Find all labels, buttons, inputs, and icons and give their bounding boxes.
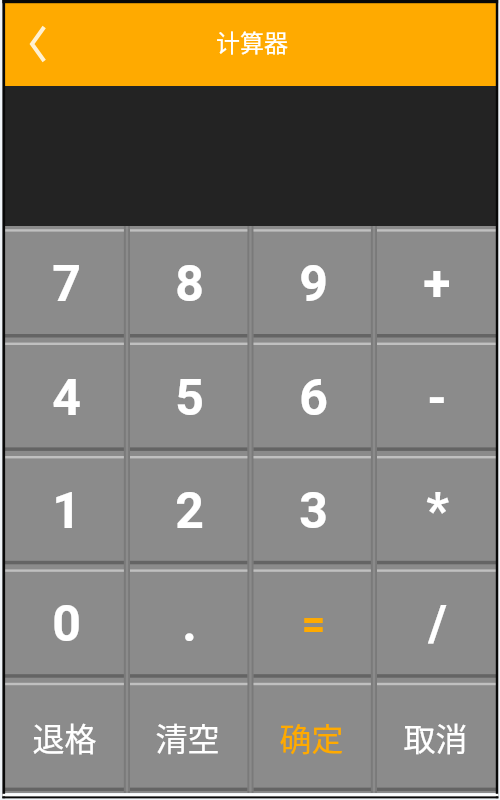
staticText: 2	[175, 482, 204, 541]
button[interactable]: 退格	[3, 680, 126, 793]
button[interactable]: /	[373, 567, 497, 680]
button[interactable]: +	[373, 226, 497, 340]
staticText: 确定	[279, 714, 344, 760]
staticText: 3	[299, 482, 328, 541]
staticText: 5	[175, 369, 204, 428]
button[interactable]: 0	[3, 567, 126, 680]
staticText: =	[301, 600, 326, 649]
staticText: /	[428, 595, 447, 654]
staticText: 退格	[32, 714, 97, 760]
button[interactable]: 3	[249, 454, 373, 567]
staticText: 取消	[403, 714, 468, 760]
button[interactable]: -	[373, 340, 497, 454]
button[interactable]: 4	[3, 340, 126, 454]
button[interactable]: 8	[126, 226, 249, 340]
staticText: 1	[52, 482, 81, 541]
button[interactable]: =	[249, 567, 373, 680]
staticText: 8	[175, 255, 204, 314]
staticText: 清空	[155, 714, 220, 760]
staticText: +	[423, 255, 451, 314]
staticText: 7	[52, 255, 81, 314]
button[interactable]: 2	[126, 454, 249, 567]
button[interactable]: 7	[3, 226, 126, 340]
button[interactable]: 1	[3, 454, 126, 567]
staticText: *	[426, 482, 449, 541]
staticText: 6	[299, 369, 328, 428]
staticText: 4	[52, 369, 81, 428]
button[interactable]: 确定	[249, 680, 373, 793]
button[interactable]: 取消	[373, 680, 497, 793]
staticText: -	[427, 369, 447, 428]
button[interactable]: Back	[11, 17, 65, 71]
button[interactable]: .	[126, 567, 249, 680]
button[interactable]: 9	[249, 226, 373, 340]
staticText: .	[182, 595, 197, 654]
staticText: 计算器	[216, 24, 288, 59]
button[interactable]: 5	[126, 340, 249, 454]
staticText: 9	[299, 255, 328, 314]
staticText: 0	[52, 595, 81, 654]
button[interactable]: *	[373, 454, 497, 567]
button[interactable]: 清空	[126, 680, 249, 793]
button[interactable]: 6	[249, 340, 373, 454]
